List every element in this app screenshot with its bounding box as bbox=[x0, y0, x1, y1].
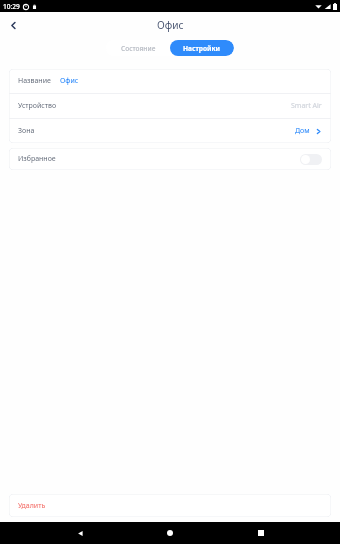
button[interactable]: Устройство bbox=[9, 94, 331, 118]
button[interactable]: Избранное bbox=[9, 148, 331, 170]
button[interactable]: Back bbox=[69, 522, 91, 544]
staticText: Удалить bbox=[18, 501, 46, 511]
staticText: Зона bbox=[18, 126, 35, 136]
staticText: Состояние bbox=[121, 44, 156, 53]
button[interactable]: Зона bbox=[9, 119, 331, 143]
staticText: Настройки bbox=[183, 44, 221, 53]
button[interactable]: Название bbox=[9, 69, 331, 93]
button[interactable]: Состояние bbox=[106, 40, 170, 56]
staticText: Офис bbox=[157, 18, 184, 32]
button[interactable]: Recent apps bbox=[250, 522, 272, 544]
staticText: Дом bbox=[295, 126, 310, 136]
button[interactable]: Home bbox=[159, 522, 181, 544]
staticText: Устройство bbox=[18, 101, 57, 111]
button[interactable]: Удалить bbox=[9, 494, 331, 517]
staticText: Офис bbox=[60, 76, 79, 86]
staticText: Smart Air bbox=[291, 101, 322, 111]
button[interactable]: Back bbox=[3, 15, 23, 35]
staticText: Избранное bbox=[18, 154, 56, 164]
staticText: Название bbox=[18, 76, 51, 86]
button[interactable]: Настройки bbox=[170, 40, 234, 56]
staticText: 10:29 bbox=[3, 2, 20, 11]
